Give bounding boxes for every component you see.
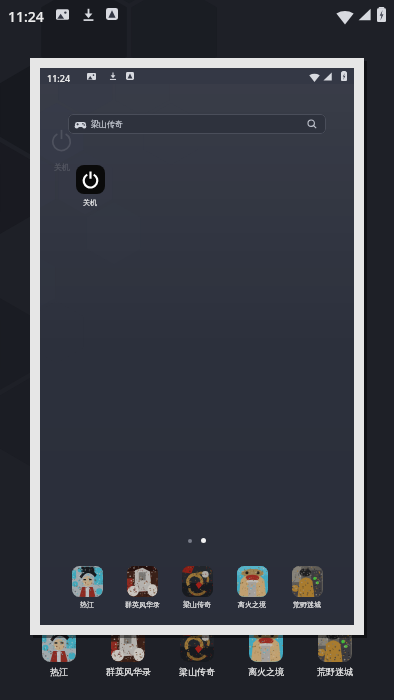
- staticText: 荒野迷城: [317, 666, 353, 677]
- button[interactable]: 关机: [68, 165, 112, 207]
- button[interactable]: 群英风华录: [94, 628, 162, 677]
- staticText: 离火之境: [238, 600, 266, 609]
- button[interactable]: 梁山传奇: [163, 628, 231, 677]
- button[interactable]: 离火之境: [225, 566, 279, 609]
- staticText: 梁山传奇: [179, 666, 215, 677]
- staticText: 关机: [54, 162, 70, 172]
- staticText: 群英风华录: [106, 666, 151, 677]
- button[interactable]: 离火之境: [232, 628, 300, 677]
- button[interactable]: 梁山传奇: [170, 566, 224, 609]
- button[interactable]: 热江: [25, 628, 93, 677]
- staticText: 热江: [50, 666, 68, 677]
- staticText: 梁山传奇: [183, 600, 211, 609]
- staticText: 群英风华录: [125, 600, 160, 609]
- staticText: 11:24: [47, 72, 71, 84]
- button[interactable]: Search: [305, 117, 319, 131]
- staticText: 离火之境: [248, 666, 284, 677]
- staticText: 荒野迷城: [293, 600, 321, 609]
- button[interactable]: 荒野迷城: [280, 566, 334, 609]
- staticText: 11:24: [8, 7, 44, 26]
- staticText: 关机: [83, 198, 97, 207]
- button[interactable]: 荒野迷城: [301, 628, 369, 677]
- staticText: 梁山传奇: [91, 119, 123, 129]
- button[interactable]: 热江: [60, 566, 114, 609]
- button[interactable]: 群英风华录: [115, 566, 169, 609]
- staticText: 热江: [80, 600, 94, 609]
- button[interactable]: 梁山传奇: [68, 114, 326, 134]
